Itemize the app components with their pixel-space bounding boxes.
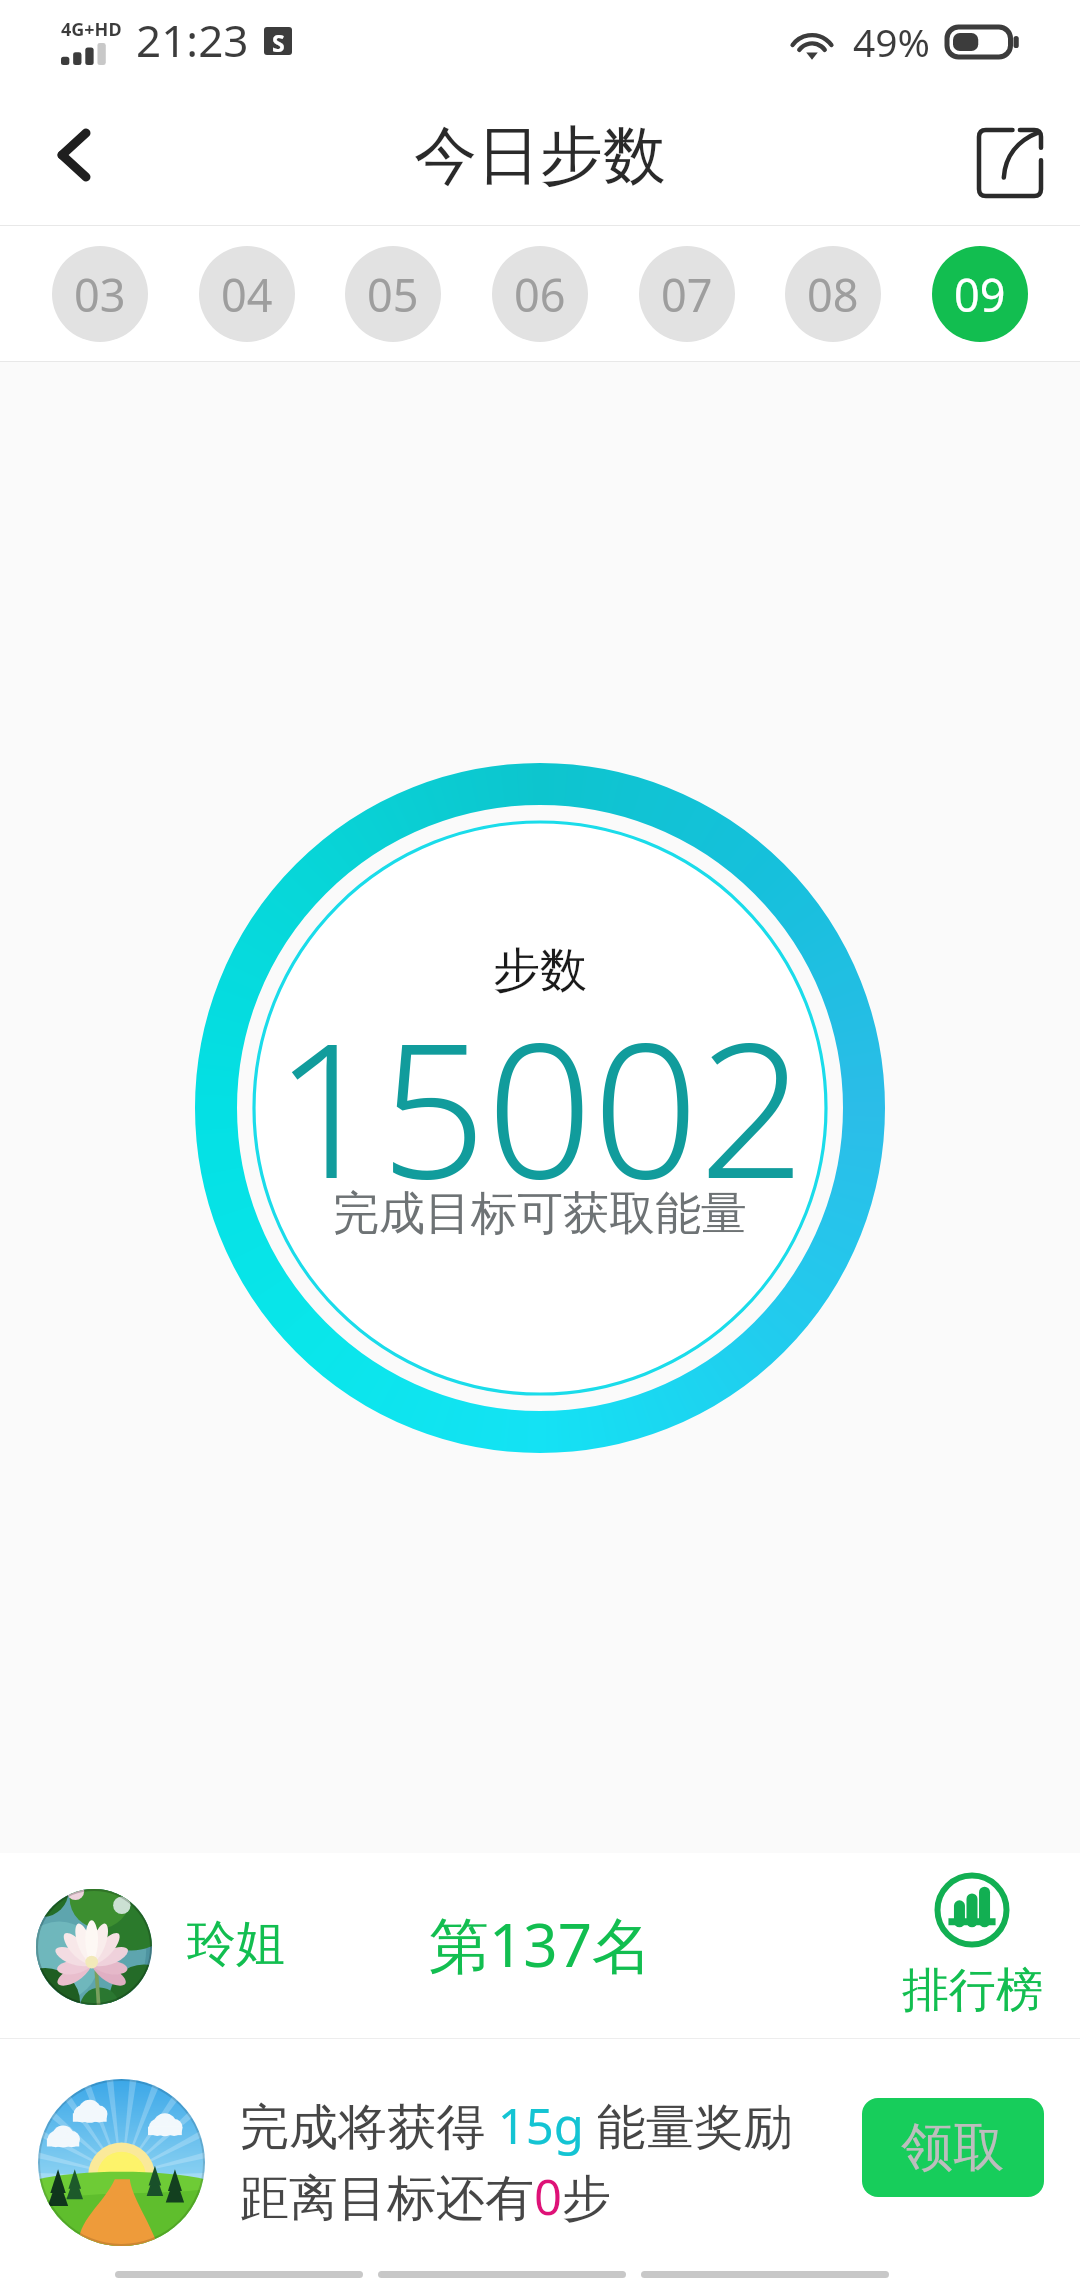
button[interactable]: 领取 <box>862 2098 1044 2197</box>
button[interactable]: Reward <box>38 2079 205 2246</box>
staticText: 距离目标还有0步 <box>240 2163 612 2230</box>
staticText: S <box>272 27 285 55</box>
staticText: 03 <box>74 264 126 325</box>
staticText: 完成将获得 15g 能量奖励 <box>240 2092 793 2159</box>
staticText: 排行榜 <box>902 1961 1043 2020</box>
staticText: 49% <box>853 15 931 68</box>
staticText: 第137名 <box>429 1903 652 1985</box>
staticText: 21:23 <box>136 10 249 70</box>
button[interactable]: 08 <box>785 246 881 342</box>
button[interactable]: 排行榜 <box>898 1872 1046 2020</box>
button[interactable]: Share <box>940 100 1080 226</box>
staticText: 4G+HD <box>61 17 122 42</box>
staticText: 05 <box>367 264 419 325</box>
button[interactable]: 05 <box>345 246 441 342</box>
button[interactable]: 06 <box>492 246 588 342</box>
staticText: 领取 <box>901 2115 1005 2181</box>
button[interactable]: Home <box>378 2258 626 2280</box>
button[interactable]: Profile photo <box>36 1889 152 2005</box>
staticText: 04 <box>221 264 273 325</box>
staticText: 今日步数 <box>414 116 666 195</box>
staticText: 06 <box>514 264 566 325</box>
button[interactable]: 09 <box>932 246 1028 342</box>
button[interactable]: Back <box>641 2258 889 2280</box>
button[interactable]: Back <box>0 100 140 226</box>
button[interactable]: 04 <box>199 246 295 342</box>
staticText: 07 <box>661 264 713 325</box>
staticText: 完成目标可获取能量 <box>333 1185 747 1243</box>
staticText: 步数 <box>493 941 587 1000</box>
button[interactable]: Recents <box>115 2258 363 2280</box>
staticText: 15002 <box>274 979 806 1232</box>
staticText: 08 <box>807 264 859 325</box>
button[interactable]: 07 <box>639 246 735 342</box>
staticText: 玲姐 <box>187 1913 285 1975</box>
button[interactable]: 03 <box>52 246 148 342</box>
staticText: 09 <box>954 264 1006 325</box>
